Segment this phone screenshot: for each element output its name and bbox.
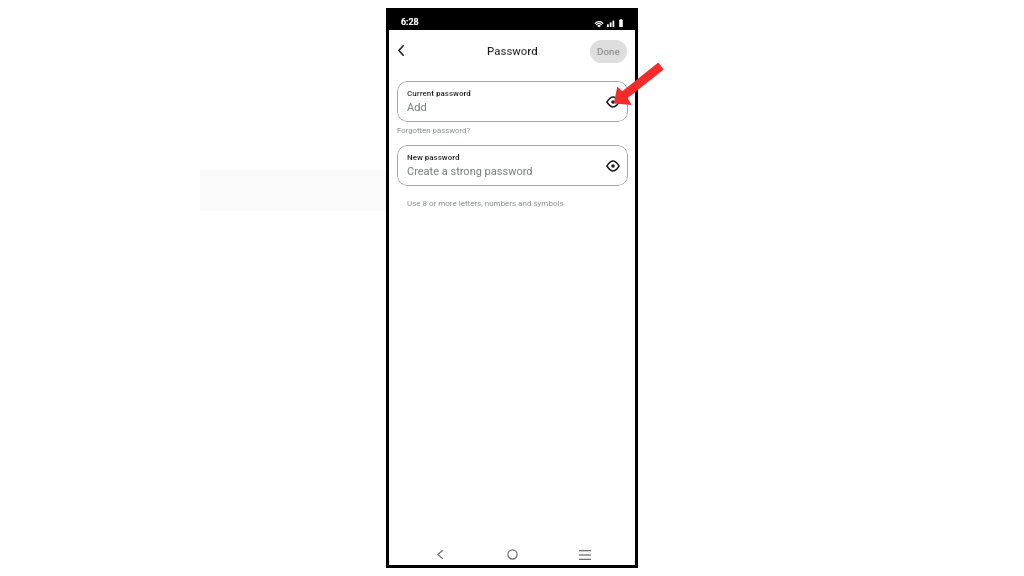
staticText: Add: [407, 101, 427, 114]
button[interactable]: Home: [502, 544, 523, 565]
staticText: Done: [597, 46, 620, 57]
staticText: 6:28: [401, 17, 419, 28]
button[interactable]: Show current password: [604, 93, 622, 111]
button[interactable]: Current password: [397, 81, 628, 122]
staticText: Create a strong password: [407, 165, 533, 178]
button[interactable]: System back: [429, 544, 450, 565]
staticText: Current password: [407, 89, 471, 98]
staticText: Password: [487, 44, 538, 57]
button[interactable]: Recent apps: [574, 544, 595, 565]
staticText: New password: [407, 153, 460, 162]
staticText: Use 8 or more letters, numbers and symbo…: [407, 199, 564, 208]
button[interactable]: Back: [391, 40, 411, 60]
button[interactable]: Forgotten password?: [397, 126, 471, 135]
button[interactable]: Show new password: [604, 157, 622, 175]
button[interactable]: Done: [590, 40, 627, 63]
button[interactable]: New password: [397, 145, 628, 186]
